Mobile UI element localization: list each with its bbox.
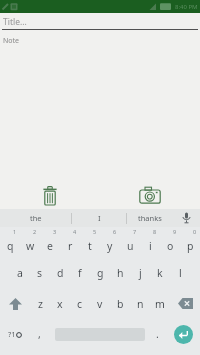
button[interactable]: h	[110, 258, 130, 288]
button[interactable]: k	[150, 258, 170, 288]
staticText: a	[17, 266, 23, 280]
button[interactable]: .	[147, 319, 167, 349]
button[interactable]: Title...	[0, 13, 200, 30]
button[interactable]: b	[110, 288, 130, 319]
staticText: c	[77, 297, 83, 311]
staticText: 7	[133, 228, 137, 235]
staticText: o	[167, 239, 174, 253]
button[interactable]: c	[70, 288, 90, 319]
staticText: 5	[93, 228, 97, 235]
button[interactable]: ?1	[0, 319, 30, 349]
button[interactable]: 1	[0, 227, 20, 258]
staticText: 2	[33, 228, 37, 235]
staticText: 6	[113, 228, 117, 235]
staticText: p	[187, 239, 194, 253]
button[interactable]: v	[90, 288, 110, 319]
staticText: t	[88, 239, 92, 253]
staticText: i	[149, 239, 152, 253]
button[interactable]: I	[72, 209, 126, 227]
staticText: l	[179, 266, 182, 280]
button[interactable]: a	[10, 258, 30, 288]
button[interactable]: d	[50, 258, 70, 288]
button[interactable]: l	[170, 258, 190, 288]
button[interactable]: m	[150, 288, 170, 319]
staticText: n	[137, 297, 144, 311]
button[interactable]: 0	[180, 227, 200, 258]
staticText: .	[156, 327, 159, 341]
staticText: ?1	[8, 329, 16, 339]
button[interactable]	[167, 319, 200, 349]
staticText: b	[117, 297, 124, 311]
button[interactable]: z	[30, 288, 50, 319]
staticText: x	[57, 297, 63, 311]
staticText: m	[155, 297, 165, 311]
button[interactable]: 9	[160, 227, 180, 258]
staticText: h	[117, 266, 124, 280]
staticText: 3	[53, 228, 57, 235]
button[interactable]: 3	[40, 227, 60, 258]
staticText: y	[107, 239, 113, 253]
staticText: u	[127, 239, 134, 253]
staticText: s	[37, 266, 43, 280]
staticText: d	[57, 266, 64, 280]
button[interactable]	[0, 288, 30, 319]
staticText: 0	[193, 228, 197, 235]
button[interactable]: 7	[120, 227, 140, 258]
staticText: ,	[38, 327, 41, 341]
staticText: 9	[173, 228, 177, 235]
staticText: 8:40 PM	[175, 3, 198, 11]
staticText: Note	[3, 36, 20, 46]
staticText: I	[98, 213, 101, 223]
staticText: j	[139, 266, 142, 280]
button[interactable]: j	[130, 258, 150, 288]
button[interactable]: 4	[60, 227, 80, 258]
button[interactable]: 6	[100, 227, 120, 258]
button[interactable]	[48, 319, 147, 349]
staticText: g	[97, 266, 104, 280]
button[interactable]	[173, 209, 200, 227]
button[interactable]: 2	[20, 227, 40, 258]
button[interactable]: the	[0, 209, 71, 227]
staticText: the	[30, 213, 42, 223]
button[interactable]: thanks	[127, 209, 173, 227]
staticText: 8	[153, 228, 157, 235]
staticText: w	[26, 239, 35, 253]
staticText: f	[78, 266, 82, 280]
button[interactable]	[42, 186, 58, 206]
button[interactable]	[170, 288, 200, 319]
staticText: r	[68, 239, 73, 253]
button[interactable]: 8	[140, 227, 160, 258]
staticText: z	[38, 297, 43, 311]
button[interactable]: f	[70, 258, 90, 288]
staticText: k	[157, 266, 163, 280]
staticText: thanks	[138, 213, 162, 223]
button[interactable]: ,	[30, 319, 48, 349]
staticText: 1	[13, 228, 17, 235]
button[interactable]: g	[90, 258, 110, 288]
button[interactable]: x	[50, 288, 70, 319]
button[interactable]: 5	[80, 227, 100, 258]
button[interactable]	[139, 186, 161, 204]
staticText: q	[7, 239, 14, 253]
staticText: e	[47, 239, 53, 253]
staticText: Title...	[3, 16, 27, 28]
button[interactable]: s	[30, 258, 50, 288]
button[interactable]: n	[130, 288, 150, 319]
staticText: v	[97, 297, 103, 311]
staticText: 4	[73, 228, 77, 235]
